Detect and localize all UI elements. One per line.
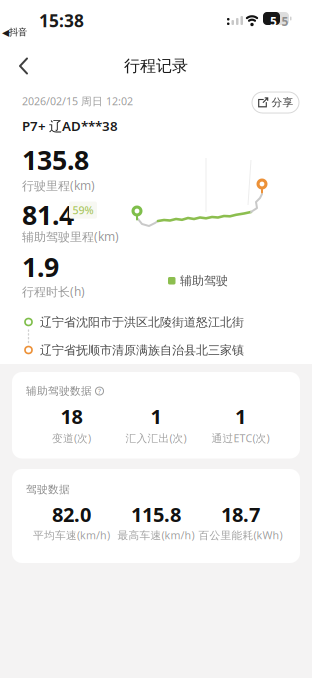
staticText: 行程记录	[124, 56, 188, 76]
staticText: 5	[281, 13, 288, 29]
staticText: 15:38	[39, 9, 84, 32]
staticText: 82.0	[52, 501, 91, 528]
button[interactable]: 分享	[252, 92, 299, 113]
staticText: 115.8	[131, 501, 181, 528]
staticText: ?	[98, 387, 101, 395]
staticText: 分享	[271, 96, 293, 109]
staticText: 18.7	[221, 501, 260, 528]
staticText: 变道(次)	[52, 431, 91, 445]
staticText: 平均车速(km/h)	[33, 528, 110, 542]
staticText: 135.8	[22, 142, 89, 177]
staticText: 辽宁省沈阳市于洪区北陵街道怒江北街	[40, 315, 244, 330]
staticText: 59%	[72, 203, 93, 217]
staticText: 辅助驾驶数据	[26, 384, 92, 398]
button[interactable]	[0, 0, 44, 44]
staticText: 81.4	[22, 197, 74, 232]
staticText: 2026/02/15 周日 12:02	[22, 94, 133, 108]
staticText: 1.9	[22, 249, 59, 284]
staticText: 18	[60, 403, 82, 430]
staticText: ◀抖音	[2, 26, 27, 38]
staticText: 1	[150, 403, 161, 430]
staticText: 百公里能耗(kWh)	[198, 528, 282, 542]
staticText: 行程时长(h)	[22, 283, 85, 299]
staticText: 5	[270, 13, 277, 29]
staticText: 通过ETC(次)	[211, 431, 269, 445]
staticText: 汇入汇出(次)	[125, 431, 186, 445]
staticText: 最高车速(km/h)	[117, 528, 194, 542]
staticText: 行驶里程(km)	[22, 177, 95, 193]
button[interactable]: ?	[95, 387, 104, 396]
staticText: P7+ 辽AD***38	[22, 117, 118, 135]
staticText: 驾驶数据	[26, 483, 70, 496]
staticText: 辅助驾驶里程(km)	[22, 228, 119, 244]
staticText: 辽宁省抚顺市清原满族自治县北三家镇	[40, 343, 244, 358]
staticText: 辅助驾驶	[180, 273, 228, 288]
staticText: 1	[235, 403, 246, 430]
